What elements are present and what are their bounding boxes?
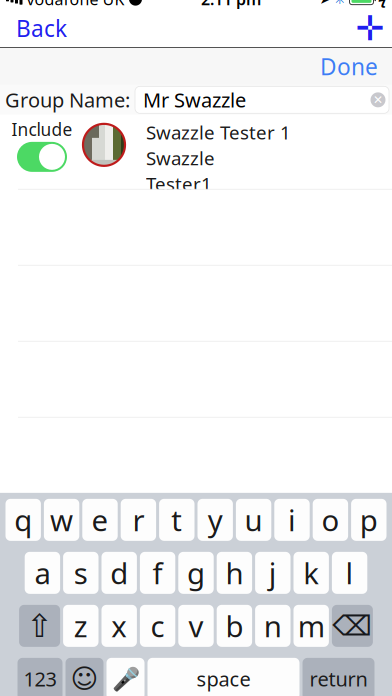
button[interactable]: a	[25, 552, 60, 594]
button[interactable]: v	[178, 605, 214, 647]
staticText: q	[14, 500, 32, 539]
staticText: c	[151, 606, 165, 645]
staticText: ➤	[319, 0, 330, 7]
staticText: b	[225, 606, 243, 645]
button[interactable]: p	[351, 499, 386, 541]
staticText: g	[187, 553, 205, 592]
staticText: d	[110, 553, 128, 592]
button[interactable]: i	[274, 499, 310, 541]
staticText: vodafone UK	[26, 0, 124, 10]
staticText: h	[225, 553, 243, 592]
button[interactable]: u	[236, 499, 271, 541]
button[interactable]: Add member	[348, 9, 392, 47]
staticText: e	[91, 500, 108, 539]
button[interactable]: q	[5, 499, 41, 541]
staticText: s	[74, 553, 88, 592]
button[interactable]: z	[63, 605, 98, 647]
button[interactable]: Shift	[19, 605, 60, 647]
staticText: ⌫	[332, 610, 372, 642]
button[interactable]: ☺	[65, 658, 103, 696]
button[interactable]: n	[255, 605, 290, 647]
button[interactable]: 🎤	[106, 658, 144, 696]
button[interactable]: 123	[17, 658, 62, 696]
staticText: w	[50, 500, 73, 539]
button[interactable]: m	[293, 605, 329, 647]
staticText: 🎤	[111, 666, 139, 692]
staticText: k	[303, 553, 319, 592]
staticText: l	[346, 553, 354, 592]
staticText: Swazzle Tester 1	[146, 120, 291, 145]
staticText: u	[245, 500, 263, 539]
staticText: t	[171, 500, 182, 539]
staticText: j	[269, 553, 277, 592]
button[interactable]: d	[101, 552, 137, 594]
staticText: Done	[320, 51, 378, 81]
button[interactable]: space	[147, 658, 299, 696]
staticText: ϟ	[378, 0, 386, 9]
staticText: ✕	[373, 93, 383, 107]
staticText: space	[196, 666, 250, 692]
staticText: Back	[16, 13, 67, 43]
staticText: ☺	[70, 664, 98, 694]
button[interactable]: e	[82, 499, 118, 541]
staticText: y	[208, 500, 223, 539]
button[interactable]: c	[140, 605, 175, 647]
button[interactable]: f	[140, 552, 175, 594]
button[interactable]: Done	[306, 48, 392, 85]
button[interactable]: j	[255, 552, 290, 594]
button[interactable]: Clear text	[367, 89, 389, 111]
staticText: ✳	[333, 0, 345, 7]
button[interactable]: s	[63, 552, 98, 594]
staticText: z	[74, 606, 88, 645]
button[interactable]: l	[332, 552, 367, 594]
button[interactable]: Delete	[332, 605, 373, 647]
button[interactable]: x	[101, 605, 137, 647]
staticText: a	[34, 553, 50, 592]
button[interactable]: k	[293, 552, 329, 594]
staticText: n	[264, 606, 282, 645]
staticText: Group Name:	[5, 87, 130, 113]
staticText: Swazzle	[146, 146, 215, 170]
staticText: ⇧	[26, 608, 53, 644]
button[interactable]: w	[44, 499, 79, 541]
staticText: i	[288, 500, 296, 539]
button[interactable]: o	[313, 499, 348, 541]
button[interactable]: t	[159, 499, 194, 541]
staticText: x	[111, 606, 127, 645]
staticText: f	[153, 553, 163, 592]
staticText: Include	[11, 118, 72, 141]
button[interactable]: h	[217, 552, 252, 594]
staticText: o	[321, 500, 339, 539]
button[interactable]: y	[197, 499, 233, 541]
staticText: r	[132, 500, 144, 539]
staticText: Tester1	[146, 171, 212, 196]
button[interactable]: r	[121, 499, 156, 541]
staticText: 123	[23, 666, 56, 692]
staticText: return	[309, 666, 367, 692]
staticText: m	[298, 606, 325, 645]
staticText: Mr Swazzle	[143, 87, 246, 113]
button[interactable]: return	[302, 658, 374, 696]
staticText: v	[188, 606, 203, 645]
button[interactable]: Include	[0, 115, 392, 189]
staticText: 2:11 pm	[201, 0, 261, 10]
button[interactable]: g	[178, 552, 214, 594]
button[interactable]: Back	[0, 9, 83, 47]
button[interactable]: b	[217, 605, 252, 647]
staticText: ✛	[355, 8, 384, 48]
staticText: p	[360, 500, 378, 539]
